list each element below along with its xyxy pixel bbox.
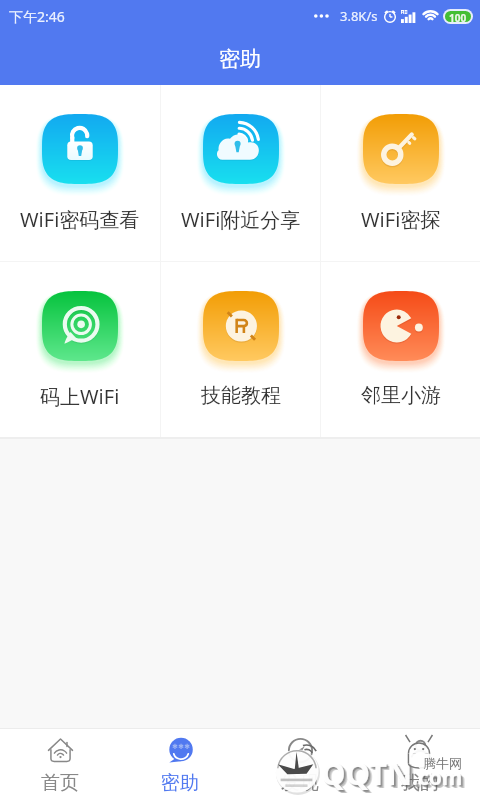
staticText: 发现 (281, 771, 319, 795)
staticText: 密助 (219, 46, 261, 72)
staticText: 码上WiFi (40, 383, 120, 410)
staticText: 首页 (41, 771, 79, 795)
other: 首页 (47, 737, 74, 764)
staticText: WiFi密码查看 (20, 206, 140, 233)
staticText: 下午2:46 (9, 7, 65, 26)
staticText: QQTN (322, 754, 414, 796)
staticText: QQTN (325, 755, 417, 797)
button[interactable]: 我的 (360, 729, 480, 800)
other: 发现 (287, 737, 314, 764)
staticText: .com (412, 763, 463, 792)
staticText: WiFi密探 (361, 206, 441, 233)
button[interactable]: 技能教程 (161, 262, 320, 437)
button[interactable]: 码上WiFi (0, 262, 160, 437)
staticText: .com (414, 764, 465, 793)
staticText: 我的 (401, 771, 439, 795)
staticText: 邻里小游 (361, 383, 441, 408)
staticText: .com (415, 766, 466, 795)
staticText: QQTN (323, 754, 415, 796)
staticText: .com (413, 765, 464, 794)
staticText: QQTN (323, 753, 415, 795)
button[interactable]: 发现 (240, 729, 360, 800)
button[interactable]: WiFi附近分享 (161, 85, 320, 261)
button[interactable]: WiFi密码查看 (0, 85, 160, 261)
staticText: QQTN (321, 752, 413, 794)
button[interactable]: WiFi密探 (321, 85, 480, 261)
staticText: WiFi附近分享 (181, 206, 301, 233)
staticText: 3.8K/s (340, 7, 378, 25)
staticText: .com (416, 766, 467, 795)
staticText: QQTN (324, 755, 416, 797)
staticText: 腾牛网 (423, 755, 462, 771)
other: 密助 (167, 737, 194, 764)
staticText: 100 (449, 11, 467, 22)
other: 我的 (407, 737, 434, 764)
button[interactable]: 邻里小游 (321, 262, 480, 437)
staticText: .com (414, 765, 465, 794)
staticText: 密助 (161, 771, 199, 795)
button[interactable]: 密助 (120, 729, 240, 800)
button[interactable]: 首页 (0, 729, 120, 800)
staticText: 技能教程 (201, 383, 281, 408)
